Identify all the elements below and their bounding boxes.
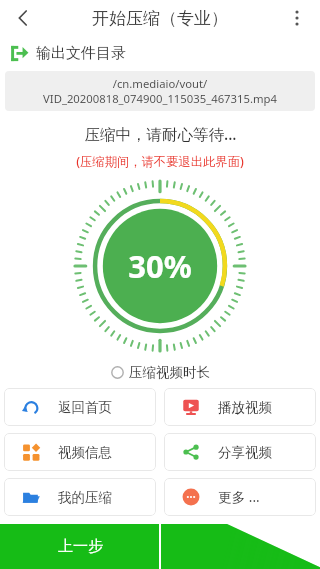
button[interactable]: 上一步 [0,524,160,569]
staticText: 压缩中，请耐心等待... [84,123,237,144]
staticText: 压缩视频时长 [129,364,210,381]
staticText: 分享视频 [218,444,272,461]
staticText: 开始压缩（专业） [92,8,228,29]
staticText: 更多 ... [218,488,260,506]
staticText: 返回首页 [58,399,112,416]
button[interactable]: More options [280,1,314,35]
staticText: 视频信息 [58,444,112,461]
button[interactable]: 输出文件目录 [10,44,320,63]
button[interactable]: 更多 ... [164,478,316,516]
staticText: (压缩期间，请不要退出此界面) [76,153,244,170]
staticText: 上一步 [58,537,103,556]
staticText: 30% [128,245,192,287]
staticText: 播放视频 [218,399,272,416]
button[interactable]: 压缩视频时长 [0,364,320,381]
button[interactable]: Back [6,1,40,35]
button[interactable]: 视频信息 [4,433,156,471]
button[interactable]: 返回首页 [4,388,156,426]
staticText: 我的压缩 [58,489,112,506]
button[interactable]: Next step [160,524,320,569]
staticText: 输出文件目录 [36,44,126,63]
button[interactable]: 分享视频 [164,433,316,471]
staticText: /cn.mediaio/vout/VID_20200818_074900_115… [10,76,310,106]
button[interactable]: 我的压缩 [4,478,156,516]
button[interactable]: 播放视频 [164,388,316,426]
